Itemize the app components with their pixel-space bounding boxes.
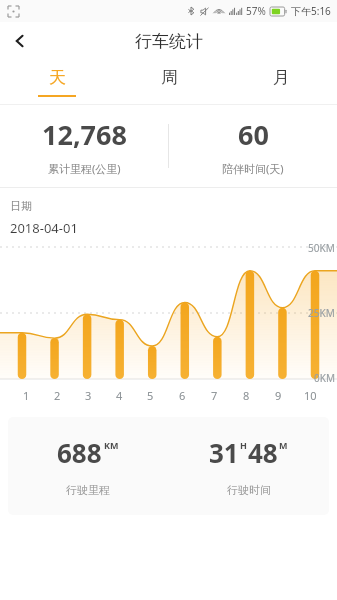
staticText: 下午5:16 [291,4,331,18]
staticText: 25KM [308,306,335,320]
staticText: 50KM [308,241,335,255]
staticText: 月 [273,67,290,88]
staticText: 行驶时间 [227,483,271,497]
staticText: 累计里程(公里) [48,161,121,176]
staticText: 日期 [10,199,32,213]
staticText: 1 [23,388,30,403]
staticText: 周 [161,67,178,88]
staticText: 57% [246,4,266,18]
button[interactable]: 天 [0,60,113,104]
staticText: 688 [57,435,102,470]
staticText: 5 [147,388,154,403]
staticText: 48 [248,435,278,470]
staticText: 行驶里程 [66,483,110,497]
staticText: M [279,439,288,451]
staticText: 12,768 [42,116,127,153]
button[interactable]: 月 [225,60,337,104]
staticText: 4 [116,388,123,403]
staticText: 陪伴时间(天) [222,161,284,176]
staticText: 0KM [314,371,335,385]
staticText: 8 [243,388,250,403]
staticText: 6 [179,388,186,403]
button[interactable]: 688 [8,417,329,515]
staticText: 天 [49,67,66,88]
staticText: 10 [304,388,317,403]
staticText: 7 [211,388,218,403]
staticText: 3 [85,388,92,403]
staticText: H [240,439,247,451]
staticText: 2018-04-01 [10,219,78,237]
button[interactable]: Back [0,22,40,60]
staticText: 9 [275,388,282,403]
staticText: KM [104,439,119,451]
staticText: 行车统计 [135,31,203,52]
button[interactable]: 周 [113,60,225,104]
staticText: 31 [209,435,239,470]
staticText: 2 [54,388,61,403]
staticText: 60 [238,116,269,153]
